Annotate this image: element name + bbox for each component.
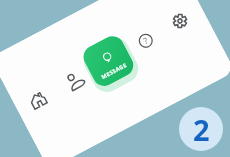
button[interactable]: MESSAGE bbox=[79, 32, 137, 90]
button[interactable]: Home bbox=[27, 89, 49, 111]
staticText: 2 bbox=[193, 110, 210, 149]
button[interactable]: Help bbox=[136, 31, 155, 50]
staticText: MESSAGE bbox=[100, 61, 128, 80]
button[interactable]: Settings bbox=[170, 11, 190, 31]
button[interactable]: 2 bbox=[179, 107, 223, 151]
staticText: ? bbox=[141, 34, 150, 47]
button[interactable]: Profile bbox=[64, 69, 87, 92]
